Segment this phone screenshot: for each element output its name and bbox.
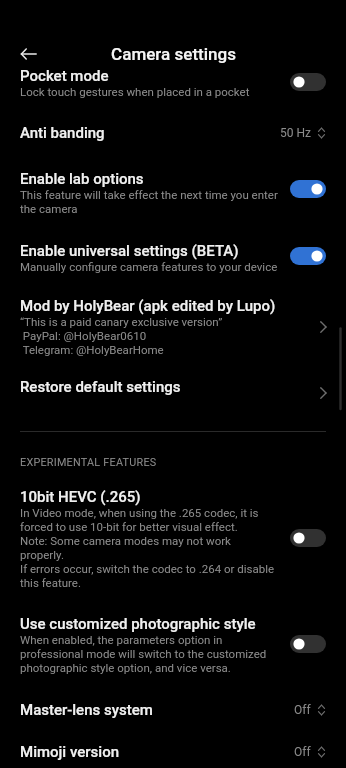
button[interactable]: Switch on — [290, 247, 326, 265]
staticText: Enable universal settings (BETA) — [20, 242, 239, 260]
button[interactable]: Back — [13, 38, 45, 70]
staticText: Lock touch gestures when placed in a poc… — [20, 85, 250, 98]
button[interactable]: Enable lab options — [0, 157, 346, 229]
staticText: EXPERIMENTAL FEATURES — [20, 456, 157, 469]
button[interactable]: Switch off — [290, 529, 326, 547]
staticText: This feature will take effect the next t… — [20, 188, 278, 216]
staticText: Mod by HolyBear (apk edited by Lupo) — [20, 297, 276, 315]
staticText: In Video mode, when using the .265 codec… — [20, 506, 275, 590]
button[interactable]: Switch off — [290, 73, 326, 91]
staticText: Use customized photographic style — [20, 615, 256, 633]
button[interactable]: Restore default settings — [0, 369, 346, 431]
staticText: Enable lab options — [20, 170, 144, 188]
button[interactable]: Mod by HolyBear (apk edited by Lupo) — [0, 285, 346, 369]
staticText: Off — [294, 745, 311, 759]
staticText: 50 Hz — [280, 126, 311, 140]
staticText: “This is a paid canary exclusive version… — [20, 315, 223, 357]
button[interactable]: Master-lens system — [0, 688, 346, 731]
staticText: Mimoji version — [20, 743, 120, 761]
button[interactable]: Pocket mode — [0, 67, 346, 111]
staticText: 10bit HEVC (.265) — [20, 488, 141, 506]
staticText: Pocket mode — [20, 67, 109, 85]
staticText: Off — [294, 703, 311, 717]
staticText: Anti banding — [20, 124, 105, 142]
staticText: Manually configure camera features to yo… — [20, 260, 278, 273]
button[interactable]: Use customized photographic style — [0, 604, 346, 688]
button[interactable]: Mimoji version — [0, 731, 346, 768]
staticText: When enabled, the parameters option in p… — [20, 633, 267, 675]
button[interactable]: Enable universal settings (BETA) — [0, 229, 346, 285]
staticText: Camera settings — [111, 44, 236, 64]
button[interactable]: Switch on — [290, 180, 326, 198]
button[interactable]: Anti banding — [0, 111, 346, 157]
button[interactable]: 10bit HEVC (.265) — [0, 488, 346, 604]
staticText: Master-lens system — [20, 701, 153, 719]
staticText: Restore default settings — [20, 378, 181, 396]
button[interactable]: Switch off — [290, 635, 326, 653]
